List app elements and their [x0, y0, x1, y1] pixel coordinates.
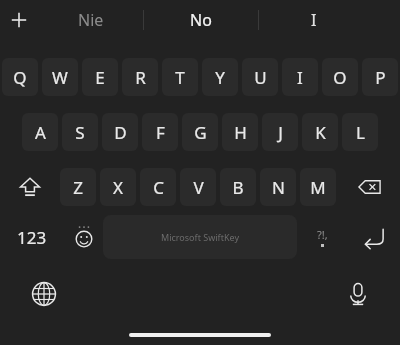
staticText: H	[234, 121, 247, 144]
button[interactable]: G	[182, 113, 218, 151]
button[interactable]: X	[100, 168, 136, 206]
staticText: No	[190, 9, 212, 31]
staticText: T	[175, 66, 185, 89]
staticText: C	[153, 176, 164, 199]
staticText: O	[333, 66, 347, 89]
button[interactable]: Z	[60, 168, 96, 206]
staticText: F	[156, 121, 165, 144]
staticText: J	[278, 121, 283, 144]
button[interactable]: 123	[0, 214, 64, 260]
button[interactable]: D	[102, 113, 138, 151]
button[interactable]: V	[180, 168, 216, 206]
button[interactable]: No	[144, 0, 258, 40]
staticText: S	[75, 121, 85, 144]
staticText: I	[311, 9, 317, 31]
button[interactable]: J	[262, 113, 298, 151]
button[interactable]: Symbols	[297, 214, 347, 260]
staticText: X	[113, 176, 123, 199]
staticText: N	[272, 176, 285, 199]
button[interactable]: Q	[2, 58, 38, 96]
button[interactable]: Add	[0, 0, 38, 40]
staticText: ?!,	[317, 227, 328, 242]
staticText: G	[194, 121, 207, 144]
button[interactable]: B	[220, 168, 256, 206]
staticText: K	[315, 121, 326, 144]
staticText: R	[135, 66, 146, 89]
button[interactable]: F	[142, 113, 178, 151]
button[interactable]: Microsoft SwiftKey	[103, 215, 297, 259]
button[interactable]: Backspace	[340, 168, 400, 206]
button[interactable]: R	[122, 58, 158, 96]
button[interactable]: U	[242, 58, 278, 96]
button[interactable]: Nie	[38, 0, 143, 40]
staticText: V	[193, 176, 204, 199]
button[interactable]: P	[362, 58, 398, 96]
button[interactable]: I	[282, 58, 318, 96]
button[interactable]: S	[62, 113, 98, 151]
button[interactable]: H	[222, 113, 258, 151]
button[interactable]: Shift	[0, 168, 60, 206]
staticText: B	[232, 176, 244, 199]
button[interactable]: Voice input	[338, 274, 378, 314]
staticText: M	[310, 176, 326, 199]
button[interactable]: C	[140, 168, 176, 206]
button[interactable]: M	[300, 168, 336, 206]
staticText: A	[35, 121, 46, 144]
button[interactable]: L	[342, 113, 378, 151]
staticText: Nie	[78, 9, 104, 31]
staticText: U	[254, 66, 267, 89]
staticText: I	[297, 66, 303, 89]
button[interactable]: A	[22, 113, 58, 151]
staticText: Y	[215, 66, 225, 89]
staticText: Q	[13, 66, 27, 89]
staticText: 123	[17, 226, 47, 249]
button[interactable]: Enter	[347, 214, 400, 260]
staticText: P	[375, 66, 386, 89]
staticText: Microsoft SwiftKey	[161, 231, 239, 243]
staticText: W	[52, 66, 68, 89]
staticText: E	[95, 66, 105, 89]
staticText: Z	[73, 176, 83, 199]
button[interactable]: Change language	[24, 274, 64, 314]
button[interactable]: E	[82, 58, 118, 96]
button[interactable]: Y	[202, 58, 238, 96]
button[interactable]: Emoji	[64, 214, 103, 260]
button[interactable]: I	[259, 0, 369, 40]
button[interactable]: W	[42, 58, 78, 96]
button[interactable]: T	[162, 58, 198, 96]
button[interactable]: O	[322, 58, 358, 96]
button[interactable]: N	[260, 168, 296, 206]
staticText: D	[114, 121, 127, 144]
button[interactable]: K	[302, 113, 338, 151]
staticText: L	[356, 121, 365, 144]
